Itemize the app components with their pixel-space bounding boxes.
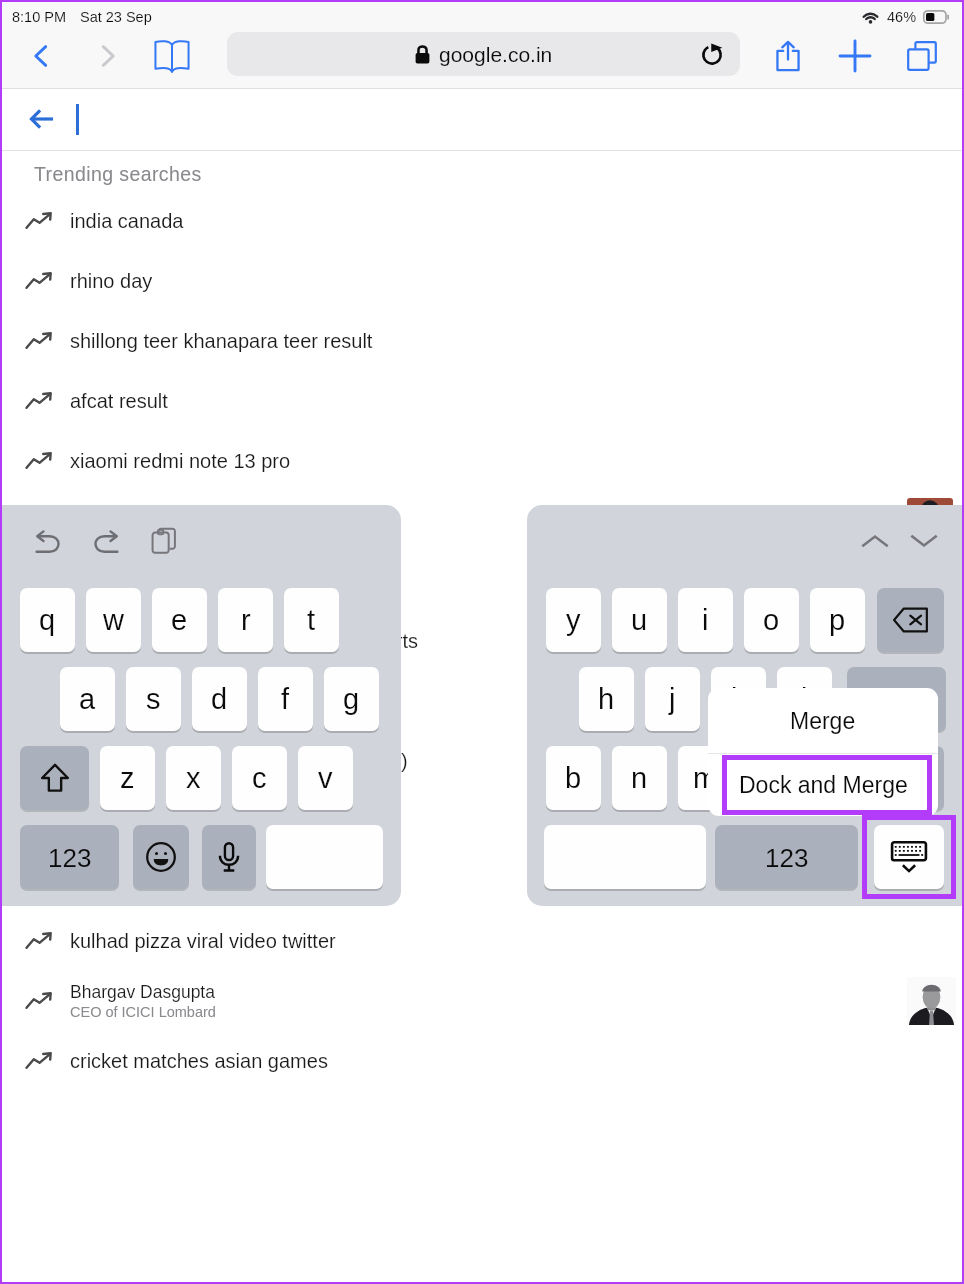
staticText: neeraj chopra javelin throw final	[70, 690, 352, 712]
button[interactable]: Bhargav Dasgupta	[2, 971, 962, 1031]
button[interactable]: w	[86, 588, 141, 652]
button[interactable]: cricket matches asian games	[2, 1031, 962, 1091]
staticText: w	[103, 604, 124, 636]
button[interactable]: Share	[765, 33, 811, 79]
button[interactable]: kulhad pizza viral video twitter	[2, 911, 962, 971]
button[interactable]: moto g84 5g launch date in india	[2, 851, 962, 911]
staticText: g	[343, 683, 360, 715]
button[interactable]: b	[546, 746, 601, 810]
staticText: 46%	[887, 9, 917, 25]
button[interactable]: Paste	[141, 518, 187, 564]
button[interactable]: x	[166, 746, 221, 810]
button[interactable]: google.co.in	[227, 32, 740, 76]
staticText: shillong teer khanapara teer result	[70, 330, 373, 352]
button[interactable]: l	[777, 667, 832, 731]
button[interactable]: Emoji	[133, 825, 189, 889]
button[interactable]: xiaomi redmi note 13 pro	[2, 431, 962, 491]
staticText: m	[693, 762, 718, 794]
staticText: n	[631, 762, 648, 794]
button[interactable]: Dictation	[202, 825, 256, 889]
button[interactable]: Vicky Kaushal ka Mobile number	[2, 491, 962, 551]
button[interactable]: Space	[544, 825, 706, 889]
button[interactable]: Return	[847, 667, 946, 731]
staticText: nifty 50 share price today	[70, 810, 294, 832]
staticText: t	[307, 604, 316, 636]
button[interactable]: s	[126, 667, 181, 731]
button[interactable]: Shift	[877, 746, 944, 810]
button[interactable]: nifty 50 share price today	[2, 791, 962, 851]
button[interactable]: q	[20, 588, 75, 652]
button[interactable]: Numbers	[20, 825, 119, 889]
button[interactable]: shillong teer khanapara teer result	[2, 311, 962, 371]
button[interactable]: jawan movie box office collection (net)	[2, 731, 962, 791]
staticText: xiaomi redmi note 13 pro	[70, 450, 291, 472]
button[interactable]: t	[284, 588, 339, 652]
staticText: p	[829, 604, 846, 636]
button[interactable]: Dock and Merge	[708, 754, 938, 816]
button[interactable]: Merge	[708, 688, 938, 753]
staticText: d	[211, 683, 228, 715]
staticText: r	[241, 604, 251, 636]
button[interactable]: e	[152, 588, 207, 652]
button[interactable]: f	[258, 667, 313, 731]
staticText: y	[566, 604, 581, 636]
button[interactable]: i	[678, 588, 733, 652]
button[interactable]: u	[612, 588, 667, 652]
button[interactable]: Numbers	[715, 825, 858, 889]
staticText: kulhad pizza viral video twitter	[70, 930, 336, 952]
staticText: india canada	[70, 210, 184, 232]
button[interactable]: Forward	[85, 33, 131, 79]
staticText: jawan movie box office collection (net)	[70, 750, 408, 772]
staticText: b	[565, 762, 582, 794]
button[interactable]: j	[645, 667, 700, 731]
button[interactable]: d	[192, 667, 247, 731]
button[interactable]: india canada	[2, 191, 962, 251]
button[interactable]: Back	[19, 96, 65, 142]
staticText: u	[631, 604, 648, 636]
button[interactable]: Redo	[83, 518, 129, 564]
button[interactable]: g	[324, 667, 379, 731]
staticText: asian games 2023 india hockey reports	[70, 630, 418, 652]
button[interactable]: Back	[18, 33, 64, 79]
button[interactable]: afcat result	[2, 371, 962, 431]
button[interactable]: Bookmarks	[149, 33, 195, 79]
button[interactable]: Space	[266, 825, 383, 889]
button[interactable]: New tab	[832, 33, 878, 79]
button[interactable]: n	[612, 746, 667, 810]
button[interactable]: Reload	[698, 40, 726, 68]
button[interactable]: r	[218, 588, 273, 652]
button[interactable]: a	[60, 667, 115, 731]
staticText: k	[731, 683, 746, 715]
button[interactable]: Backspace	[877, 588, 944, 652]
staticText: i	[702, 604, 709, 636]
button[interactable]: world cup 2023 schedule team india	[2, 551, 962, 611]
staticText: h	[598, 683, 615, 715]
button[interactable]: Undo	[25, 518, 71, 564]
staticText: f	[281, 683, 290, 715]
staticText: x	[186, 762, 201, 794]
button[interactable]: m	[678, 746, 733, 810]
staticText: o	[763, 604, 780, 636]
button[interactable]: Shift	[20, 746, 89, 810]
button[interactable]: v	[298, 746, 353, 810]
button[interactable]: y	[546, 588, 601, 652]
button[interactable]: c	[232, 746, 287, 810]
button[interactable]: Hide keyboard	[874, 825, 944, 889]
button[interactable]: k	[711, 667, 766, 731]
button[interactable]: asian games 2023 india hockey reports	[2, 611, 962, 671]
button[interactable]: h	[579, 667, 634, 731]
button[interactable]: Tabs	[899, 33, 945, 79]
button[interactable]: o	[744, 588, 799, 652]
button[interactable]: neeraj chopra javelin throw final	[2, 671, 962, 731]
button[interactable]: Next	[901, 518, 947, 564]
button[interactable]: p	[810, 588, 865, 652]
staticText: Dock and Merge	[739, 772, 908, 798]
staticText: 8:10 PM	[12, 9, 66, 25]
button[interactable]: rhino day	[2, 251, 962, 311]
button[interactable]: z	[100, 746, 155, 810]
button[interactable]: Previous	[852, 518, 898, 564]
staticText: Merge	[790, 708, 856, 734]
staticText: 123	[48, 843, 92, 872]
staticText: afcat result	[70, 390, 168, 412]
staticText: CEO of ICICI Lombard	[70, 1004, 216, 1020]
